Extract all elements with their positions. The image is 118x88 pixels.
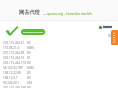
staticText: 80 — [27, 61, 31, 65]
staticText: 80 — [27, 51, 31, 55]
staticText: 201.115.236.198 — [3, 86, 27, 88]
staticText: 110.88.21.4 — [3, 46, 20, 50]
staticText: DOWNLOAD NOW — [23, 30, 43, 33]
button[interactable]: 93.246.20.1 — [0, 80, 118, 85]
staticText: 108.12.22.68 — [3, 71, 21, 75]
staticText: 203.115.244.170 — [3, 61, 27, 65]
button[interactable]: 188.12.0.7 — [0, 75, 118, 80]
button[interactable]: DOWNLOAD NOW — [21, 29, 45, 35]
other: Verified — [4, 25, 19, 37]
staticText: 203.115.244.41 — [3, 41, 25, 45]
staticText: 80 — [27, 86, 31, 88]
button[interactable]: 108.12.22.68 — [0, 70, 118, 75]
staticText: 8080 — [27, 46, 34, 50]
staticText: 8080 — [27, 66, 34, 70]
staticText: 443 — [27, 81, 33, 85]
staticText: 93.246.20.1 — [3, 81, 20, 85]
button[interactable]: 201.115.236.198 — [0, 85, 118, 88]
staticText: 80 — [27, 71, 31, 75]
button[interactable]: 203.115.244.170 — [0, 60, 118, 65]
staticText: — ipaess.org - know the world's — [43, 11, 93, 15]
staticText: 202.116.244.16 — [3, 56, 25, 60]
staticText: 网去代理 — [19, 9, 40, 16]
button[interactable]: 96.102.92.189 — [0, 65, 118, 70]
button[interactable]: Feedback — [111, 30, 118, 45]
staticText: 80 — [27, 76, 31, 80]
button[interactable]: 201.115.244.88 — [0, 50, 118, 55]
button[interactable]: 203.115.244.41 — [0, 40, 118, 45]
staticText: 80 — [27, 41, 31, 45]
button[interactable]: 网去代理 — [19, 9, 93, 16]
staticText: 81 — [27, 56, 31, 60]
button[interactable]: 202.116.244.16 — [0, 55, 118, 60]
button[interactable]: 110.88.21.4 — [0, 45, 118, 50]
staticText: 201.115.244.88 — [3, 51, 25, 55]
staticText: 96.102.92.189 — [3, 66, 23, 70]
staticText: 188.12.0.7 — [3, 76, 18, 80]
button[interactable]: Security badge — [98, 25, 112, 29]
